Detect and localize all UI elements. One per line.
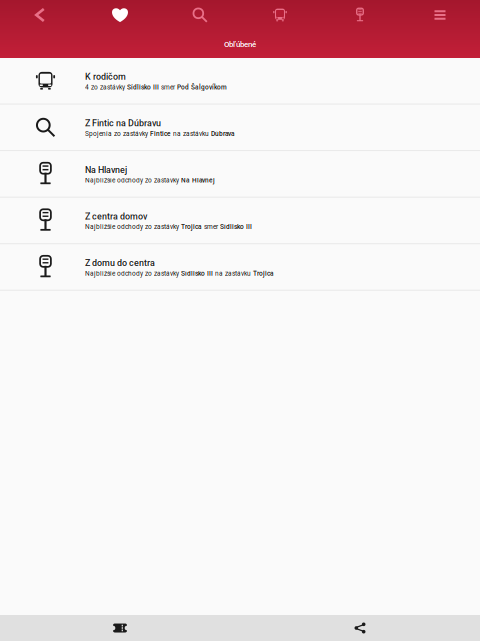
- button[interactable]: Z centra domov: [0, 198, 480, 243]
- button[interactable]: Share: [300, 615, 420, 641]
- staticText: Najbližšie odchody zo zastávky Trojica s…: [85, 223, 252, 231]
- staticText: Z Fintic na Dúbravu: [85, 118, 161, 128]
- staticText: Najbližšie odchody zo zastávky Sídlisko …: [85, 270, 274, 277]
- staticText: K rodičom: [85, 71, 126, 82]
- button[interactable]: Menu: [400, 0, 480, 30]
- staticText: 4 zo zastávky Sídlisko III smer Pod Šalg…: [85, 83, 227, 91]
- button[interactable]: Stops: [320, 0, 400, 30]
- staticText: Z centra domov: [85, 211, 147, 222]
- staticText: Najbližšie odchody zo zastávky Na Hlavne…: [85, 177, 215, 184]
- button[interactable]: Back: [0, 0, 80, 30]
- staticText: Spojenia zo zastávky Fintice na zastávku…: [85, 130, 235, 137]
- button[interactable]: Tickets: [60, 615, 180, 641]
- staticText: Z domu do centra: [85, 258, 155, 268]
- staticText: Na Hlavnej: [85, 165, 127, 175]
- button[interactable]: Na Hlavnej: [0, 151, 480, 197]
- staticText: Obľúbené: [224, 40, 256, 49]
- button[interactable]: Departures: [240, 0, 320, 30]
- button[interactable]: K rodičom: [0, 58, 480, 103]
- button[interactable]: Z Fintic na Dúbravu: [0, 104, 480, 150]
- button[interactable]: Favourites: [80, 0, 160, 30]
- button[interactable]: Search: [160, 0, 240, 30]
- button[interactable]: Z domu do centra: [0, 244, 480, 290]
